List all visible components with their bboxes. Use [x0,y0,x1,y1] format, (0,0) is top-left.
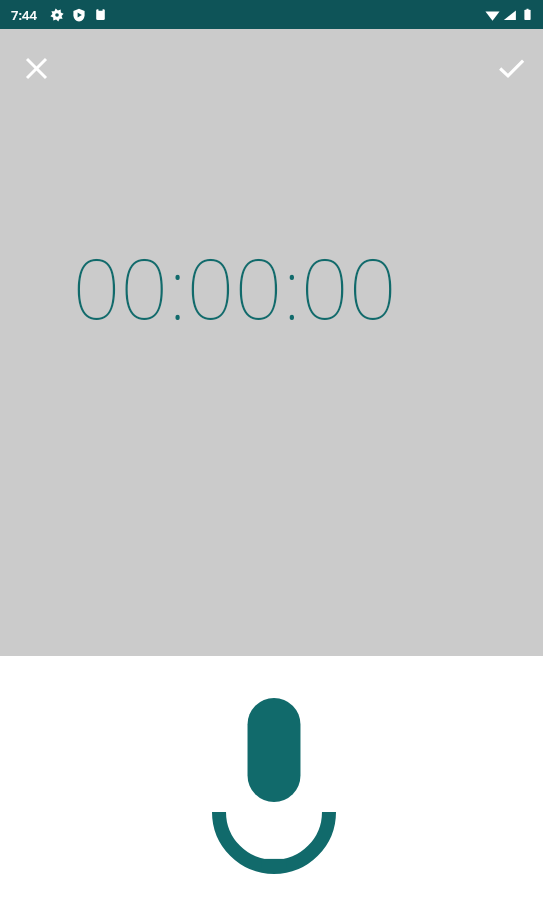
staticText: 7:44 [11,6,37,24]
button[interactable]: Record [212,698,336,868]
button[interactable]: Cancel [12,44,60,92]
button[interactable]: Save [487,44,535,92]
staticText: 00:00:00 [0,229,469,343]
